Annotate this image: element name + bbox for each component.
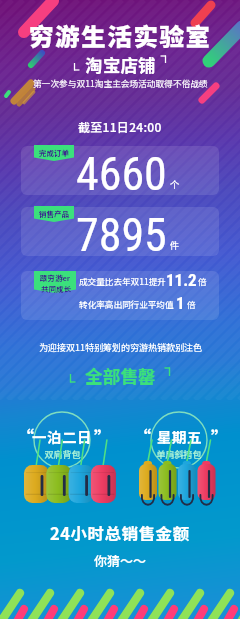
staticText: 转化率高出同行业平均值 <box>79 298 174 310</box>
staticText: 跟穷游er <box>40 272 71 283</box>
staticText: 截至11日24:00 <box>78 118 162 135</box>
staticText: 共同成长 <box>41 283 71 294</box>
staticText: 单肩斜挎包 <box>156 448 202 461</box>
staticText: 7895 <box>76 208 167 262</box>
staticText: 完成订单 <box>39 147 69 158</box>
staticText: 24小时总销售金额 <box>50 521 190 545</box>
staticText: 星期五 <box>157 426 202 447</box>
staticText: 双肩背包 <box>44 448 81 461</box>
staticText: ” <box>94 424 111 449</box>
staticText: 成交量比去年双11提升 <box>79 275 166 287</box>
staticText: 倍 <box>198 275 207 287</box>
staticText: 你猜～～ <box>94 551 147 570</box>
staticText: 件 <box>170 238 180 252</box>
staticText: 第一次参与双11淘宝主会场活动取得不俗战绩 <box>33 77 208 90</box>
staticText: 全部售罄 <box>85 363 156 387</box>
staticText: 穷游生活实验室 <box>29 18 212 53</box>
staticText: 1 <box>176 293 185 313</box>
staticText: 销售产品 <box>39 208 69 219</box>
staticText: 11.2 <box>166 270 197 290</box>
staticText: 一泊二日 <box>32 426 92 447</box>
staticText: ” <box>211 424 228 449</box>
staticText: 4660 <box>76 147 167 201</box>
staticText: 倍 <box>187 298 196 310</box>
staticText: 个 <box>170 177 180 191</box>
staticText: “ <box>134 424 151 449</box>
staticText: “ <box>17 424 34 449</box>
staticText: 淘宝店铺 <box>85 52 156 74</box>
staticText: 为迎接双11特别筹划的穷游热销款别注色 <box>39 341 202 354</box>
